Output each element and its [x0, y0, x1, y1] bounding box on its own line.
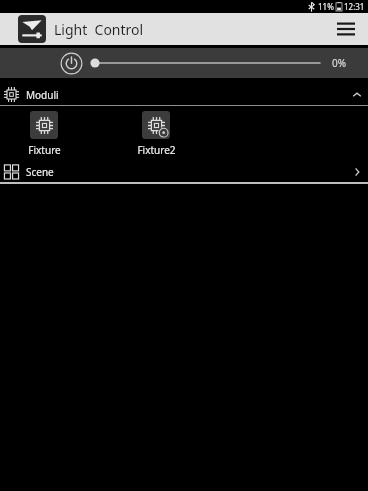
- staticText: Fixture2: [137, 143, 176, 157]
- staticText: Moduli: [26, 88, 59, 102]
- staticText: Light Control: [54, 20, 144, 39]
- button[interactable]: Fixture: [14, 106, 74, 157]
- staticText: Scene: [26, 165, 54, 179]
- button[interactable]: Menu: [328, 13, 364, 45]
- staticText: 11%: [318, 1, 334, 12]
- staticText: 0%: [332, 56, 354, 70]
- button[interactable]: Brightness slider: [90, 51, 320, 75]
- staticText: Fixture: [28, 143, 61, 157]
- button[interactable]: Moduli: [0, 84, 368, 105]
- button[interactable]: Scene: [0, 161, 368, 182]
- button[interactable]: App icon: [18, 15, 46, 43]
- staticText: 12:31: [344, 1, 365, 12]
- button[interactable]: Fixture2: [126, 106, 186, 157]
- button[interactable]: Power: [58, 50, 84, 76]
